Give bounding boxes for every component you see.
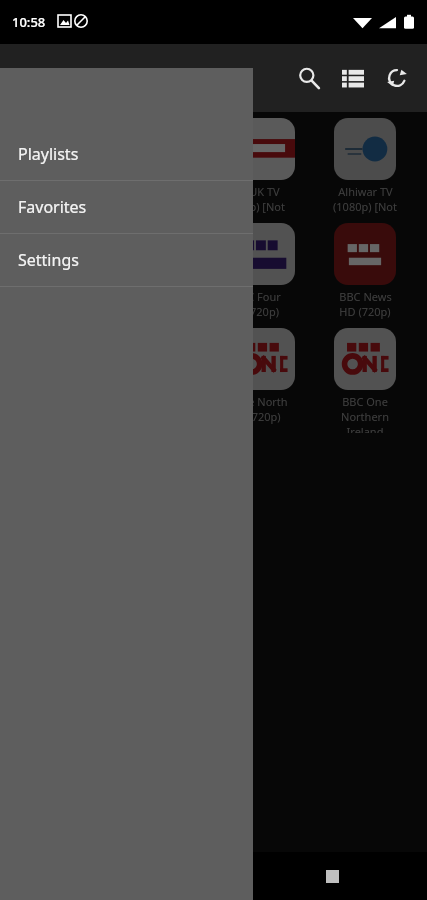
- button[interactable]: Search: [287, 56, 331, 100]
- staticText: IPTV Manager: [78, 65, 206, 91]
- staticText: UK TV: [249, 184, 280, 199]
- staticText: Playlists: [18, 143, 79, 165]
- staticText: C Four: [247, 289, 281, 304]
- button[interactable]: List view: [331, 56, 375, 100]
- staticText: (1080p) [Not: [333, 199, 397, 214]
- staticText: 720p): [250, 304, 279, 319]
- button[interactable]: Favorites: [0, 181, 253, 233]
- button[interactable]: C Four: [222, 223, 306, 328]
- staticText: Northern Ireland: [323, 409, 407, 433]
- staticText: (720p): [248, 409, 281, 424]
- button[interactable]: Settings: [0, 234, 253, 286]
- staticText: Favorites: [18, 196, 87, 218]
- button[interactable]: Refresh: [375, 56, 419, 100]
- staticText: BBC One: [342, 394, 388, 409]
- staticText: 10:58: [12, 13, 46, 31]
- staticText: 0p) [Not: [243, 199, 285, 214]
- button[interactable]: Recent apps: [309, 853, 355, 899]
- button[interactable]: Alhiwar TV: [323, 118, 407, 223]
- staticText: ne North: [241, 394, 288, 409]
- button[interactable]: Back: [10, 56, 54, 100]
- staticText: Alhiwar TV: [338, 184, 393, 199]
- staticText: HD (720p): [339, 304, 391, 319]
- staticText: Settings: [18, 249, 79, 271]
- button[interactable]: BBC News: [323, 223, 407, 328]
- button[interactable]: Playlists: [0, 128, 253, 180]
- button[interactable]: UK TV: [222, 118, 306, 223]
- button[interactable]: TV Europe: [20, 223, 104, 328]
- button[interactable]: BBC One: [323, 328, 407, 433]
- staticText: BBC News: [339, 289, 392, 304]
- button[interactable]: ne North: [222, 328, 306, 433]
- button[interactable]: TV (360p): [20, 118, 104, 223]
